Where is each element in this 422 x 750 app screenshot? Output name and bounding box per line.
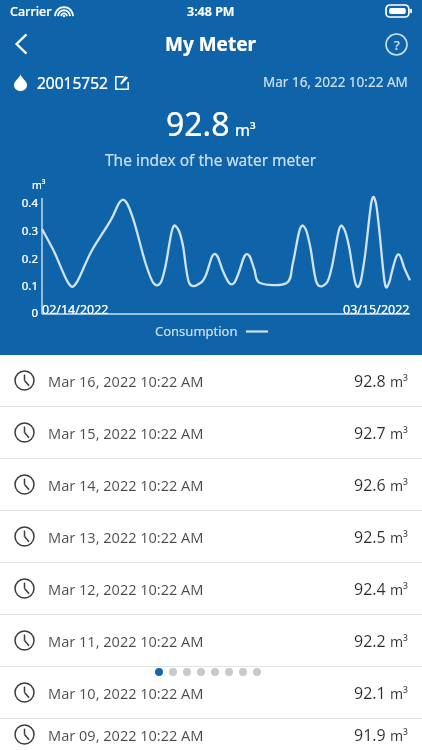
staticText: Mar 16, 2022 10:22 AM [263,73,408,91]
staticText: 0.3 [4,223,38,239]
staticText: m³ [32,178,46,192]
button[interactable]: Back [0,22,44,66]
button[interactable]: Mar 15, 2022 10:22 AM [0,407,422,458]
staticText: m³ [390,528,408,547]
staticText: 92.4 [354,578,386,600]
staticText: 92.2 [354,630,386,652]
staticText: Mar 09, 2022 10:22 AM [48,725,204,745]
button[interactable]: Mar 11, 2022 10:22 AM [0,615,422,666]
button[interactable]: 20015752 [14,72,129,93]
staticText: ? [394,36,400,54]
staticText: 92.1 [354,682,386,704]
staticText: 92.6 [354,474,386,496]
staticText: 3:48 PM [187,3,235,20]
staticText: m³ [390,372,408,391]
button[interactable]: Help [378,26,414,62]
button[interactable]: Mar 14, 2022 10:22 AM [0,459,422,510]
staticText: Consumption [155,322,238,340]
staticText: m³ [390,580,408,599]
staticText: Carrier [10,3,52,20]
button[interactable]: Mar 12, 2022 10:22 AM [0,563,422,614]
staticText: 20015752 [37,72,108,93]
staticText: 92.5 [354,526,386,548]
button[interactable]: Mar 13, 2022 10:22 AM [0,511,422,562]
staticText: 03/15/2022 [343,301,410,318]
staticText: m³ [390,476,408,495]
staticText: My Meter [165,31,257,57]
staticText: m³ [390,684,408,703]
staticText: Mar 16, 2022 10:22 AM [48,371,204,391]
staticText: The index of the water meter [105,149,317,170]
button[interactable]: Mar 09, 2022 10:22 AM [0,719,422,750]
staticText: Mar 12, 2022 10:22 AM [48,579,204,599]
button[interactable]: Mar 16, 2022 10:22 AM [0,355,422,406]
staticText: 92.8 [166,102,230,146]
staticText: m³ [235,119,256,141]
staticText: 02/14/2022 [42,301,109,318]
staticText: Mar 11, 2022 10:22 AM [48,631,204,651]
staticText: 91.9 [354,724,386,746]
staticText: 0.2 [4,251,38,267]
staticText: 0 [4,305,38,321]
staticText: Mar 13, 2022 10:22 AM [48,527,204,547]
staticText: 92.8 [354,370,386,392]
staticText: m³ [390,424,408,443]
staticText: m³ [390,726,408,745]
staticText: m³ [390,632,408,651]
staticText: 0.4 [4,195,38,211]
button[interactable]: Mar 10, 2022 10:22 AM [0,667,422,718]
staticText: 92.7 [354,422,386,444]
staticText: Mar 14, 2022 10:22 AM [48,475,204,495]
staticText: 0.1 [4,278,38,294]
staticText: Mar 10, 2022 10:22 AM [48,683,204,703]
staticText: Mar 15, 2022 10:22 AM [48,423,204,443]
